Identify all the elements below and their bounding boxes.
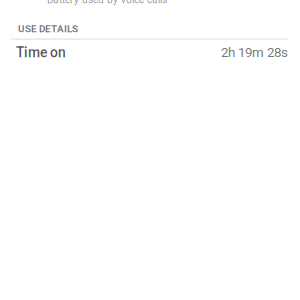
- button[interactable]: Time on: [0, 46, 300, 60]
- staticText: Time on: [16, 44, 66, 61]
- staticText: Battery used by voice calls: [47, 0, 167, 6]
- staticText: USE DETAILS: [18, 23, 78, 35]
- staticText: 2h 19m 28s: [221, 45, 288, 60]
